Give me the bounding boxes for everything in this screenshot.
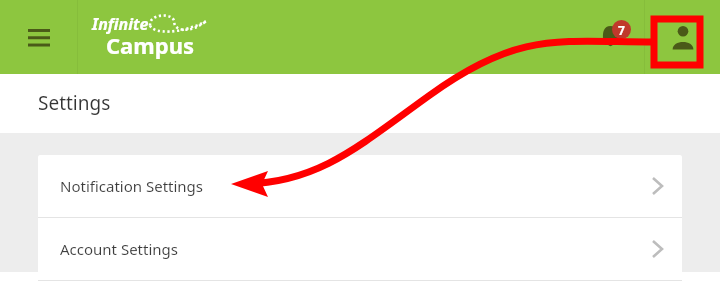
- button[interactable]: Account: [645, 0, 720, 74]
- staticText: 7: [618, 22, 625, 38]
- button[interactable]: Notifications, 7 unread: [588, 0, 644, 74]
- staticText: Settings: [38, 90, 111, 116]
- staticText: Campus: [106, 30, 195, 60]
- button[interactable]: Notification Settings: [38, 155, 682, 217]
- staticText: Notification Settings: [60, 176, 204, 196]
- button[interactable]: Account Settings: [38, 218, 682, 280]
- staticText: Infinite: [92, 13, 149, 35]
- staticText: Account Settings: [60, 239, 178, 259]
- button[interactable]: Menu: [0, 0, 77, 74]
